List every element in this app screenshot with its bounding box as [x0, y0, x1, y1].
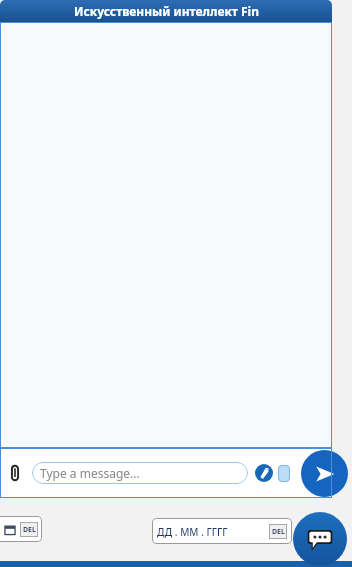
button[interactable]: Delete — [20, 522, 38, 537]
button[interactable]: Camera — [278, 465, 290, 482]
button[interactable]: Искусственный интеллект Fin — [0, 0, 332, 22]
button[interactable]: Send — [301, 450, 348, 497]
button[interactable]: Voice message — [255, 464, 273, 482]
button[interactable]: Open chat — [293, 512, 347, 566]
button[interactable]: Attach file — [4, 462, 26, 484]
staticText: ДД . ММ . ГГГГ — [157, 525, 228, 539]
staticText: Type a message... — [40, 465, 140, 481]
button[interactable]: Delete — [269, 524, 287, 539]
button[interactable]: ДД . ММ . ГГГГ — [152, 518, 292, 544]
button[interactable]: Delete — [0, 516, 42, 542]
staticText: Искусственный интеллект Fin — [74, 3, 259, 19]
staticText: DEL — [23, 525, 36, 535]
button[interactable]: Type a message... — [40, 462, 240, 484]
staticText: DEL — [272, 527, 285, 537]
